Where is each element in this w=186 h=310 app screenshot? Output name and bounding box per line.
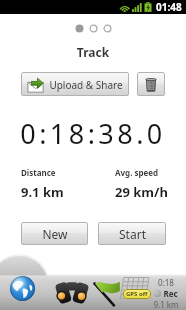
button[interactable]: GPS off	[119, 276, 153, 302]
staticText: 9.1 km	[153, 299, 179, 310]
staticText: Track	[0, 44, 186, 60]
staticText: 29 km/h	[115, 183, 168, 201]
staticText: Rec	[163, 288, 178, 299]
staticText: New	[42, 226, 68, 242]
staticText: Upload & Share	[49, 78, 123, 92]
button[interactable]: Start	[98, 222, 166, 245]
staticText: 01:48	[156, 0, 182, 14]
button[interactable]: Map	[10, 276, 35, 301]
button[interactable]: Waypoint	[92, 277, 121, 307]
staticText: GPS off	[126, 290, 148, 298]
button[interactable]: New	[21, 222, 88, 245]
staticText: Start	[119, 226, 146, 242]
button[interactable]: Search	[55, 280, 89, 302]
button[interactable]: Delete	[137, 72, 165, 96]
staticText: Distance	[21, 167, 56, 178]
staticText: 0:18	[158, 277, 174, 288]
staticText: 9.1 km	[21, 183, 64, 201]
staticText: Avg. speed	[115, 167, 159, 178]
staticText: 0:18:38.0	[0, 115, 186, 152]
button[interactable]: Upload & Share	[21, 72, 129, 96]
